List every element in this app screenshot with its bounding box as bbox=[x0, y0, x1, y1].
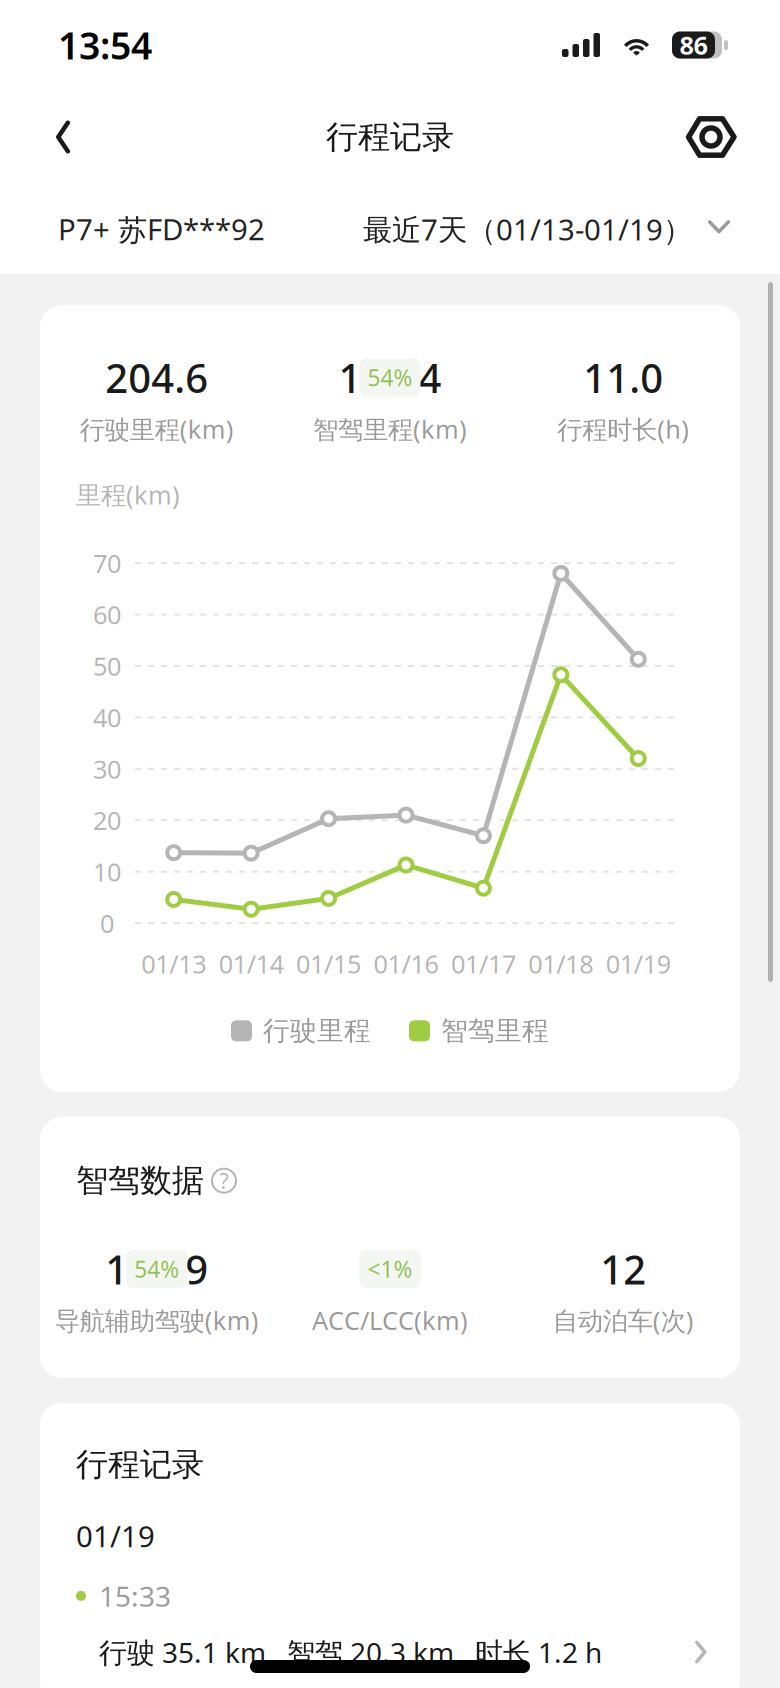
staticText: 行程记录 bbox=[76, 1445, 204, 1484]
button[interactable]: P7+ 苏FD***92 bbox=[58, 193, 265, 264]
staticText: 204.6 bbox=[105, 351, 208, 404]
staticText: 自动泊车(次) bbox=[553, 1303, 694, 1337]
staticText: 54% bbox=[134, 1254, 179, 1284]
staticText: 15:33 bbox=[99, 1577, 171, 1614]
staticText: 智驾里程(km) bbox=[313, 412, 467, 446]
button[interactable]: About autonomous-driving data bbox=[212, 1169, 236, 1193]
staticText: 40 bbox=[93, 701, 121, 734]
staticText: ACC/LCC(km) bbox=[312, 1303, 468, 1337]
staticText: 86 bbox=[679, 28, 707, 62]
staticText: 20 bbox=[93, 803, 121, 837]
staticText: 01/16 bbox=[373, 947, 438, 980]
staticText: 10 bbox=[93, 855, 121, 888]
staticText: 智驾数据 bbox=[76, 1161, 204, 1200]
staticText: 行驶里程 bbox=[263, 1014, 371, 1047]
staticText: 行程记录 bbox=[326, 117, 454, 157]
staticText: 70 bbox=[93, 546, 121, 580]
staticText: 01/19 bbox=[606, 947, 671, 980]
button[interactable]: 最近7天（01/13-01/19） bbox=[363, 193, 732, 264]
button[interactable]: Back bbox=[30, 96, 98, 178]
staticText: 54% bbox=[367, 362, 412, 393]
staticText: 60 bbox=[93, 598, 121, 631]
staticText: 里程(km) bbox=[76, 478, 180, 511]
staticText: 行驶 35.1 km 智驾 20.3 km 时长 1.2 h bbox=[99, 1633, 602, 1671]
staticText: 30 bbox=[93, 752, 121, 786]
staticText: ? bbox=[219, 1166, 228, 1195]
staticText: 109.9 bbox=[105, 1242, 208, 1295]
staticText: P7+ 苏FD***92 bbox=[58, 209, 265, 248]
staticText: 行驶里程(km) bbox=[80, 412, 234, 446]
staticText: 01/15 bbox=[296, 947, 361, 980]
button[interactable]: Vehicle settings bbox=[672, 96, 750, 178]
staticText: 0.5 bbox=[361, 1242, 418, 1295]
staticText: <1% bbox=[367, 1254, 412, 1284]
staticText: 01/18 bbox=[528, 947, 593, 980]
staticText: 50 bbox=[93, 649, 121, 683]
staticText: 110.4 bbox=[338, 351, 441, 404]
staticText: 导航辅助驾驶(km) bbox=[55, 1303, 259, 1337]
staticText: 行程时长(h) bbox=[557, 412, 689, 446]
staticText: 最近7天（01/13-01/19） bbox=[363, 209, 692, 248]
staticText: 0 bbox=[100, 906, 114, 940]
staticText: 01/14 bbox=[219, 947, 284, 980]
staticText: 11.0 bbox=[583, 351, 663, 404]
staticText: 智驾里程 bbox=[441, 1014, 549, 1047]
staticText: 01/17 bbox=[451, 947, 516, 980]
staticText: 01/19 bbox=[76, 1516, 155, 1555]
staticText: 13:54 bbox=[58, 20, 152, 70]
staticText: 12 bbox=[600, 1242, 646, 1295]
button[interactable]: 15:33 bbox=[40, 1555, 740, 1688]
staticText: 01/13 bbox=[141, 947, 206, 980]
